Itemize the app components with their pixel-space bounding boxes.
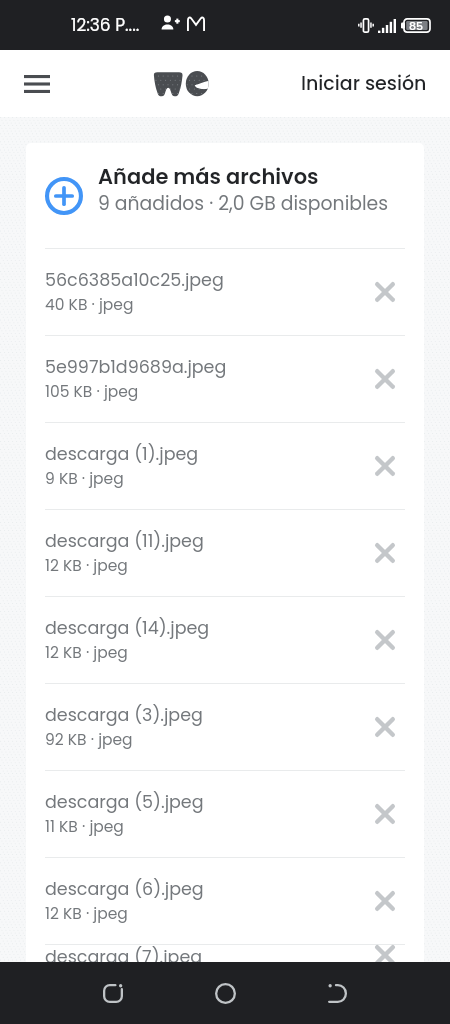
staticText: Añade más archivos (98, 162, 319, 191)
button[interactable]: Remove file (361, 877, 409, 925)
staticText: 9 KB · jpeg (45, 468, 124, 490)
button[interactable]: Back (314, 970, 360, 1016)
staticText: 12:36 P.... (71, 13, 140, 37)
button[interactable]: Remove file (361, 529, 409, 577)
button[interactable]: Remove file (361, 790, 409, 838)
button[interactable]: Iniciar sesión (287, 60, 438, 107)
button[interactable]: Remove file (361, 616, 409, 664)
button[interactable]: Remove file (361, 268, 409, 316)
staticText: 105 KB · jpeg (45, 381, 139, 403)
staticText: 5e997b1d9689a.jpeg (45, 355, 227, 380)
staticText: 56c6385a10c25.jpeg (45, 268, 224, 293)
staticText: 11 KB · jpeg (45, 816, 124, 838)
button[interactable]: Remove file (361, 703, 409, 751)
staticText: descarga (6).jpeg (45, 877, 204, 902)
staticText: 12 KB · jpeg (45, 555, 128, 577)
staticText: descarga (1).jpeg (45, 442, 199, 467)
staticText: descarga (5).jpeg (45, 790, 204, 815)
button[interactable]: Remove file (361, 442, 409, 490)
button[interactable]: Recents (90, 970, 136, 1016)
staticText: Iniciar sesión (301, 70, 427, 97)
button[interactable]: Añade más archivos (26, 143, 424, 248)
staticText: descarga (7).jpeg (45, 945, 203, 962)
button[interactable]: Menu (11, 58, 63, 110)
staticText: 92 KB · jpeg (45, 729, 133, 751)
button[interactable]: Remove file (361, 355, 409, 403)
staticText: 85 (409, 18, 424, 33)
staticText: descarga (3).jpeg (45, 703, 203, 728)
staticText: 12 KB · jpeg (45, 903, 128, 925)
staticText: descarga (11).jpeg (45, 529, 204, 554)
button[interactable]: Remove file (361, 945, 409, 962)
staticText: 12 KB · jpeg (45, 642, 128, 664)
staticText: 9 añadidos · 2,0 GB disponibles (98, 190, 389, 216)
button[interactable]: Home (202, 970, 248, 1016)
staticText: descarga (14).jpeg (45, 616, 210, 641)
staticText: 40 KB · jpeg (45, 294, 134, 316)
